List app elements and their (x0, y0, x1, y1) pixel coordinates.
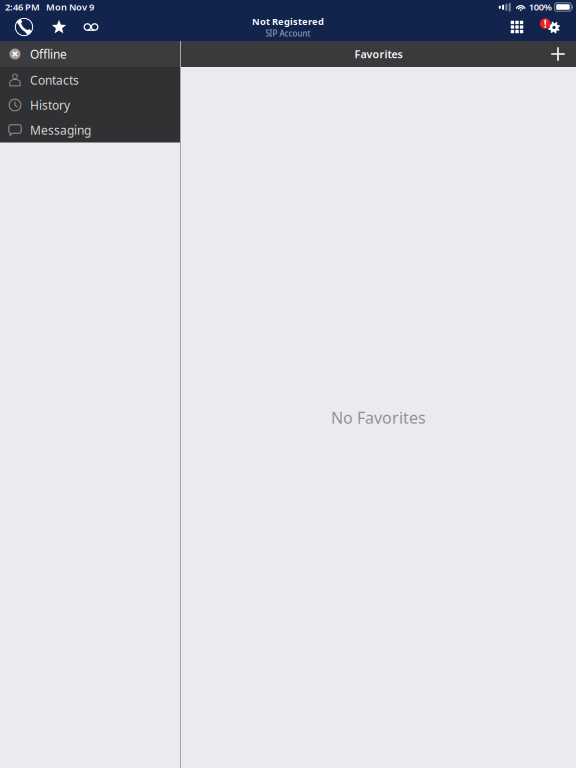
staticText: Favorites (354, 47, 402, 61)
staticText: Not Registered (252, 15, 324, 28)
staticText: 100% (529, 1, 552, 13)
staticText: SIP Account (265, 28, 310, 39)
staticText: ! (544, 16, 547, 31)
button[interactable]: Keypad (496, 13, 538, 40)
staticText: Offline (30, 46, 67, 62)
button[interactable]: Contacts (0, 67, 180, 92)
staticText: History (30, 97, 70, 113)
staticText: Messaging (30, 122, 91, 138)
staticText: Contacts (30, 72, 79, 88)
button[interactable]: Add Favorite (540, 41, 576, 67)
button[interactable]: Favorites (42, 13, 76, 40)
button[interactable]: Settings (538, 13, 576, 40)
button[interactable]: Messaging (0, 117, 180, 142)
button[interactable]: Dial (0, 13, 42, 40)
button[interactable]: History (0, 92, 180, 117)
staticText: Mon Nov 9 (46, 1, 94, 13)
staticText: No Favorites (331, 407, 426, 428)
button[interactable]: Offline (0, 41, 180, 67)
button[interactable]: Voicemail (76, 13, 106, 40)
staticText: 2:46 PM (5, 1, 40, 13)
